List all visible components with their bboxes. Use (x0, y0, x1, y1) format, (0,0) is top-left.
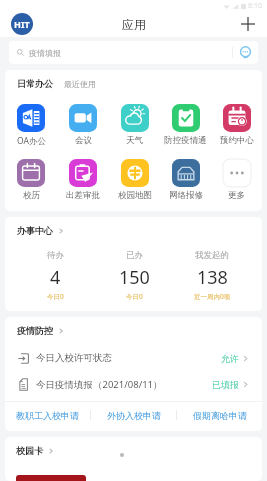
staticText: 防控疫情通 (164, 135, 207, 146)
staticText: 网络报修 (169, 190, 203, 201)
button[interactable]: 更多 (211, 159, 262, 201)
staticText: 8:10 (248, 1, 262, 11)
staticText: 天气 (126, 135, 143, 146)
button[interactable]: 待办 (16, 250, 95, 301)
button[interactable]: 校历 (5, 159, 57, 201)
button[interactable]: 今日疫情填报（2021/08/11） (5, 371, 262, 397)
button[interactable]: 今日入校许可状态 (5, 345, 262, 371)
staticText: 外协入校申请 (107, 410, 161, 421)
button[interactable]: Voice assistant (233, 41, 258, 64)
staticText: 出差审批 (66, 190, 100, 201)
staticText: 校园地图 (118, 190, 152, 201)
button[interactable]: 天气 (109, 104, 160, 146)
staticText: 校园卡 (16, 445, 43, 456)
staticText: 预约中心 (220, 135, 254, 146)
button[interactable]: 假期离哈申请 (177, 402, 262, 428)
button[interactable]: 校园地图 (109, 159, 160, 201)
staticText: 150 (119, 265, 150, 290)
staticText: 今日0 (47, 292, 64, 301)
button[interactable]: 外协入校申请 (91, 402, 176, 428)
staticText: 假期离哈申请 (193, 410, 247, 421)
button[interactable]: 教职工入校申请 (5, 402, 90, 428)
button[interactable]: OA办公 (5, 104, 57, 147)
button[interactable] (16, 475, 86, 481)
staticText: 4 (50, 265, 61, 290)
button[interactable]: 防控疫情通 (160, 104, 211, 146)
button[interactable]: 疫情填报 (9, 41, 258, 64)
button[interactable]: 办事中心 (17, 225, 65, 236)
button[interactable]: 会议 (57, 104, 109, 146)
staticText: 待办 (47, 250, 64, 261)
staticText: 我发起的 (195, 250, 229, 261)
button[interactable]: 我发起的 (173, 250, 251, 301)
staticText: OA办公 (17, 135, 46, 147)
staticText: 最近使用 (64, 79, 96, 89)
staticText: 今日入校许可状态 (36, 352, 112, 364)
staticText: 疫情填报 (29, 48, 61, 58)
staticText: 近一周内0项 (194, 292, 231, 301)
staticText: 今日0 (126, 292, 143, 301)
button[interactable]: Profile (11, 13, 33, 35)
staticText: 已办 (126, 250, 143, 261)
staticText: 会议 (75, 135, 92, 146)
staticText: 更多 (228, 190, 245, 201)
button[interactable]: 出差审批 (57, 159, 109, 201)
button[interactable]: 网络报修 (160, 159, 211, 201)
staticText: 日常办公 (17, 78, 53, 89)
staticText: 教职工入校申请 (16, 410, 79, 421)
staticText: HIT (14, 18, 30, 30)
button[interactable]: 预约中心 (211, 104, 262, 146)
staticText: 校历 (23, 190, 40, 201)
button[interactable]: Add (238, 14, 258, 34)
staticText: 允许 (221, 353, 239, 364)
staticText: 今日疫情填报（2021/08/11） (36, 378, 163, 391)
button[interactable]: 疫情防控 (17, 325, 65, 336)
button[interactable]: 已办 (95, 250, 173, 301)
staticText: 138 (197, 265, 228, 290)
staticText: 办事中心 (17, 225, 53, 236)
staticText: 已填报 (212, 379, 239, 390)
staticText: 疫情防控 (17, 325, 53, 336)
staticText: 应用 (122, 17, 146, 32)
button[interactable]: 校园卡 (16, 445, 55, 456)
